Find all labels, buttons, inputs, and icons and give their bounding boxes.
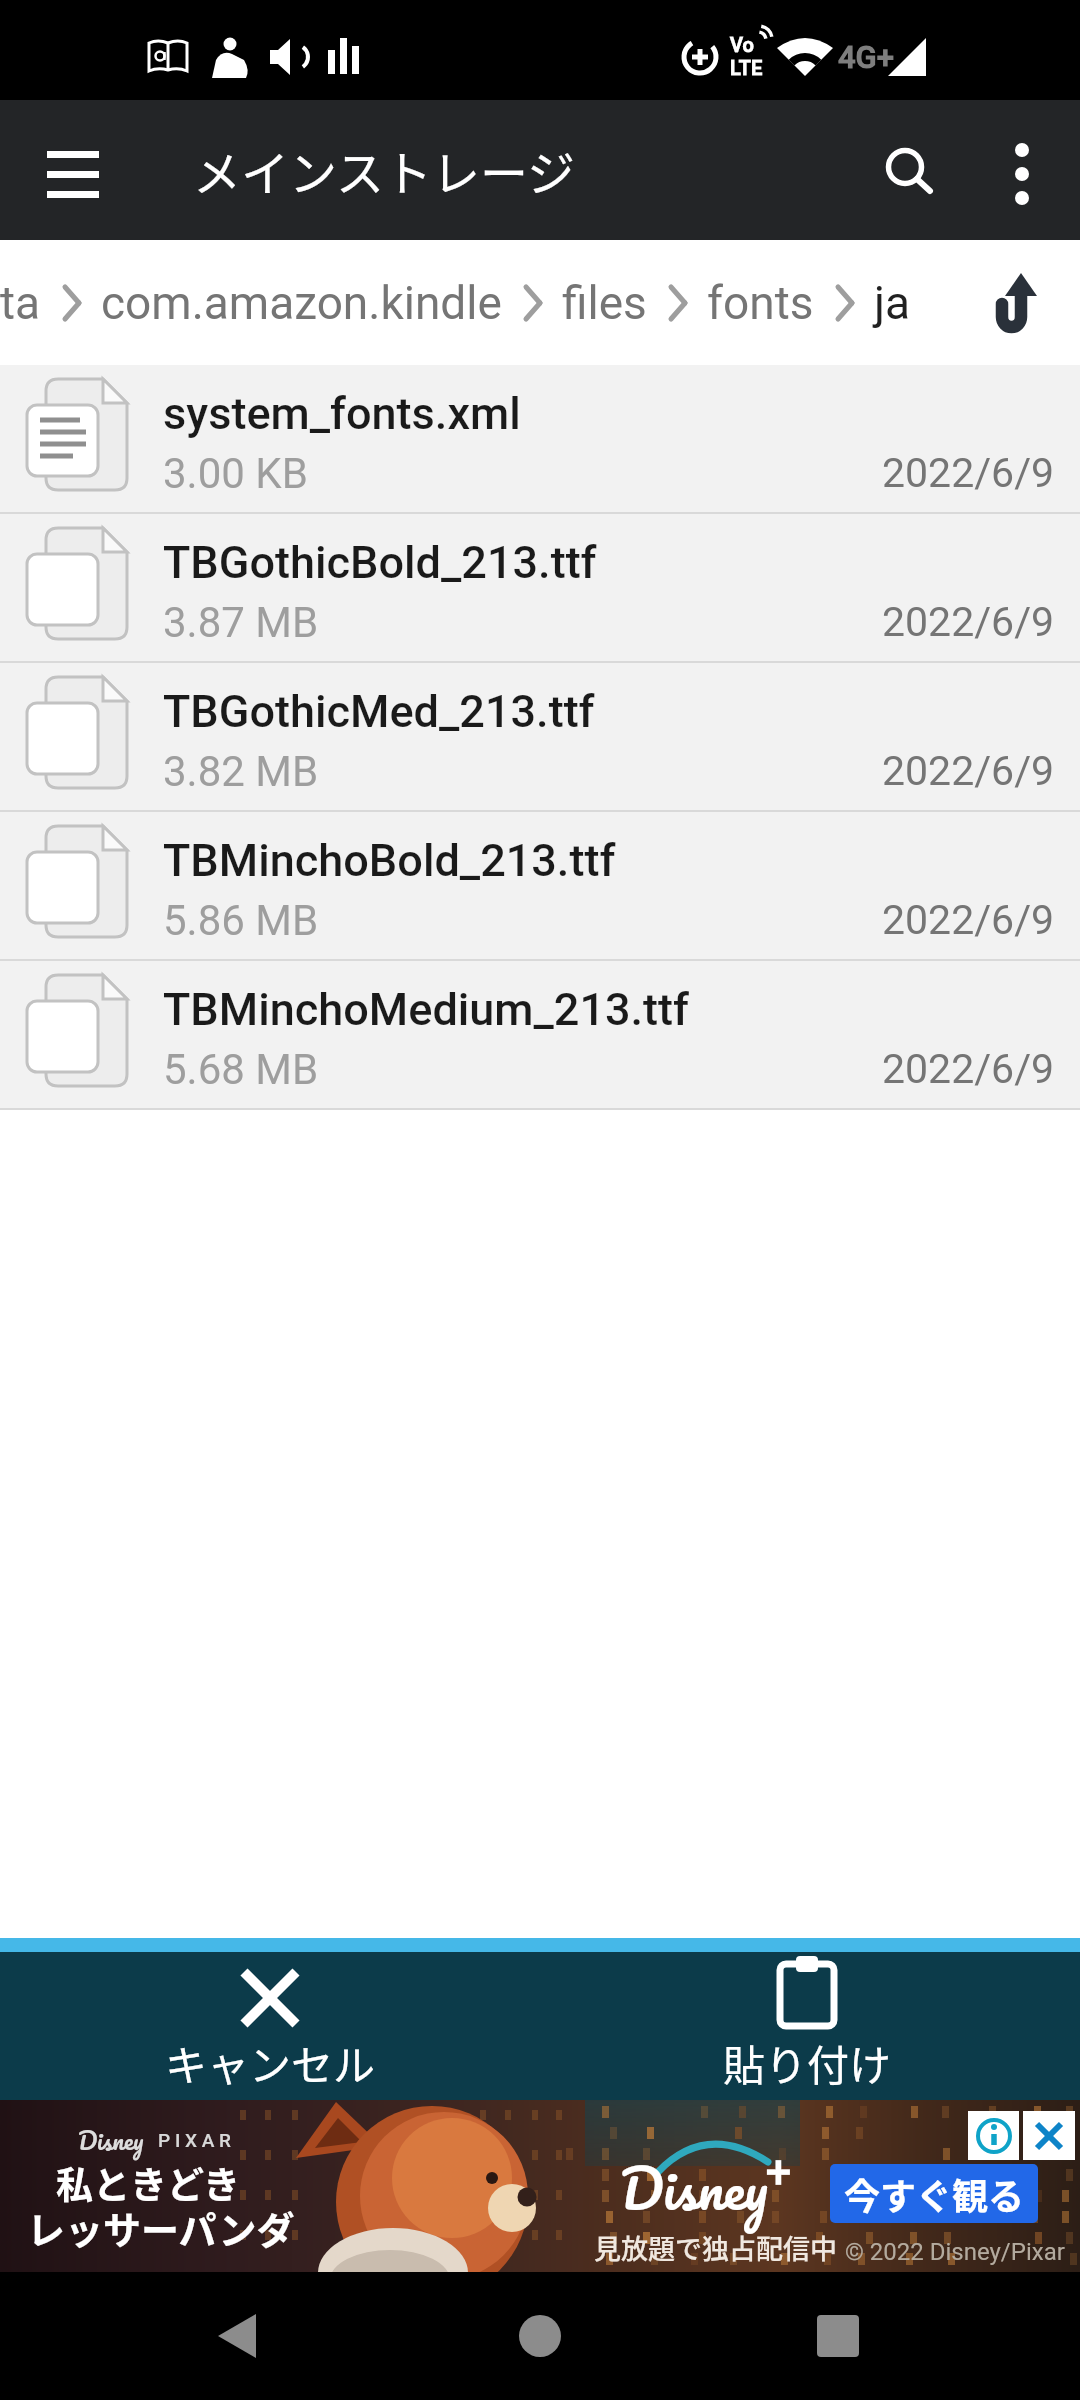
staticText: 2022/6/9 xyxy=(882,896,1055,944)
staticText: TBMinchoBold_213.ttf xyxy=(163,834,616,887)
staticText: ta xyxy=(0,276,41,330)
staticText: 3.82 MB xyxy=(163,747,319,796)
button[interactable]: TBMinchoBold_213.ttf xyxy=(0,812,1080,959)
staticText: ja xyxy=(874,276,911,330)
button[interactable] xyxy=(170,2272,305,2400)
staticText: TBMinchoMedium_213.ttf xyxy=(163,983,690,1036)
button[interactable] xyxy=(860,125,950,215)
button[interactable]: TBGothicMed_213.ttf xyxy=(0,663,1080,810)
staticText: fonts xyxy=(707,276,814,330)
staticText: P I X A R xyxy=(158,2129,231,2151)
staticText: 5.68 MB xyxy=(163,1045,319,1094)
button[interactable]: system_fonts.xml xyxy=(0,365,1080,512)
staticText: 4G+ xyxy=(838,39,895,75)
staticText: © 2022 Disney/Pixar xyxy=(845,2238,1065,2266)
button[interactable] xyxy=(975,255,1065,350)
staticText: 私ときどき xyxy=(56,2156,240,2210)
button[interactable] xyxy=(30,133,118,213)
staticText: system_fonts.xml xyxy=(163,387,521,440)
staticText: 2022/6/9 xyxy=(882,598,1055,646)
staticText: 3.87 MB xyxy=(163,598,319,647)
button[interactable]: Disney xyxy=(0,2100,1080,2272)
staticText: + xyxy=(766,2146,791,2198)
staticText: キャンセル xyxy=(165,2032,376,2093)
staticText: Disney xyxy=(620,2142,768,2233)
staticText: 貼り付け xyxy=(723,2032,892,2093)
staticText: files xyxy=(562,276,647,330)
button[interactable]: 貼り付け xyxy=(657,1952,957,2100)
staticText: メインストレージ xyxy=(193,135,576,205)
staticText: TBGothicMed_213.ttf xyxy=(163,685,595,738)
button[interactable]: TBGothicBold_213.ttf xyxy=(0,514,1080,661)
staticText: 2022/6/9 xyxy=(882,747,1055,795)
staticText: LTE xyxy=(730,56,763,79)
staticText: Disney xyxy=(78,2120,144,2160)
button[interactable]: キャンセル xyxy=(120,1952,420,2100)
button[interactable]: 今すぐ観る xyxy=(830,2164,1038,2223)
staticText: 見放題で独占配信中 xyxy=(594,2228,837,2267)
button[interactable] xyxy=(1023,2111,1075,2160)
staticText: Vo xyxy=(730,33,754,56)
button[interactable]: TBMinchoMedium_213.ttf xyxy=(0,961,1080,1108)
staticText: 2022/6/9 xyxy=(882,1045,1055,1093)
staticText: TBGothicBold_213.ttf xyxy=(163,536,597,589)
staticText: com.amazon.kindle xyxy=(101,276,502,330)
button[interactable] xyxy=(968,2111,1019,2160)
staticText: 3.00 KB xyxy=(163,449,308,498)
staticText: 2022/6/9 xyxy=(882,449,1055,497)
staticText: レッサーパンダ xyxy=(27,2200,295,2255)
staticText: 今すぐ観る xyxy=(844,2168,1025,2220)
staticText: 5.86 MB xyxy=(163,896,319,945)
button[interactable] xyxy=(472,2272,607,2400)
button[interactable] xyxy=(980,125,1070,215)
button[interactable] xyxy=(770,2272,905,2400)
